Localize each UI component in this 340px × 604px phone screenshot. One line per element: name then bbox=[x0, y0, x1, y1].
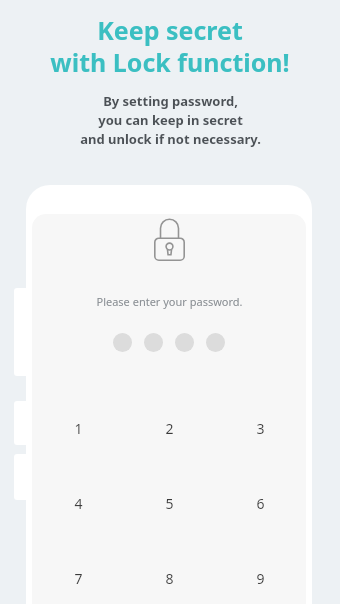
staticText: 4 bbox=[74, 494, 83, 513]
staticText: 3 bbox=[256, 419, 265, 438]
button[interactable]: 3 bbox=[215, 391, 306, 466]
button[interactable]: 5 bbox=[124, 466, 215, 541]
button[interactable]: 8 bbox=[124, 541, 215, 604]
button[interactable]: 7 bbox=[32, 541, 124, 604]
button[interactable]: 6 bbox=[215, 466, 306, 541]
staticText: Keep secret with Lock function! bbox=[50, 13, 290, 79]
staticText: 9 bbox=[256, 569, 265, 588]
button[interactable]: 2 bbox=[124, 391, 215, 466]
staticText: 7 bbox=[74, 569, 83, 588]
staticText: 1 bbox=[74, 419, 83, 438]
other: Locked bbox=[154, 218, 185, 261]
button[interactable]: 9 bbox=[215, 541, 306, 604]
button[interactable]: 4 bbox=[32, 466, 124, 541]
staticText: 2 bbox=[165, 419, 174, 438]
staticText: Please enter your password. bbox=[96, 294, 243, 309]
staticText: 5 bbox=[165, 494, 174, 513]
staticText: By setting password, you can keep in sec… bbox=[80, 92, 261, 148]
staticText: 6 bbox=[256, 494, 265, 513]
button[interactable]: 1 bbox=[32, 391, 124, 466]
staticText: 8 bbox=[165, 569, 174, 588]
